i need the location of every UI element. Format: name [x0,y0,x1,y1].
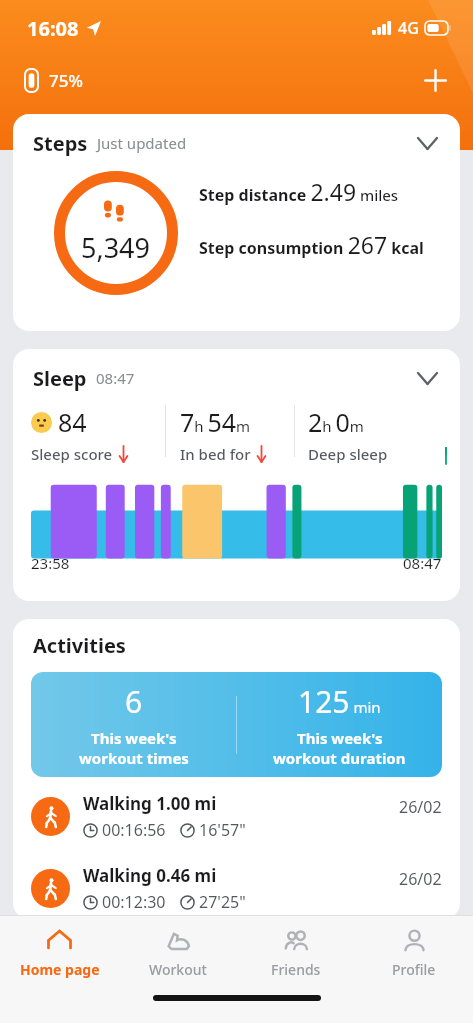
staticText: 6 [125,681,143,722]
staticText: Home page [20,960,100,979]
staticText: 00:16:56 [102,819,166,841]
staticText: Walking 1.00 mi [83,792,217,815]
staticText: Sleep [33,365,87,392]
staticText: 08:47 [96,368,135,388]
staticText: Deep sleep duration [308,444,446,467]
button[interactable]: Friends [237,916,355,990]
staticText: This week's [91,728,177,748]
staticText: 125 min [298,681,381,722]
staticText: Sleep score [31,444,113,464]
button[interactable]: Steps [13,114,460,331]
button[interactable]: Walking 1.00 mi [13,787,460,845]
staticText: 26/02 [399,868,442,890]
staticText: 2h 0m [308,405,364,439]
staticText: 16:08 [27,15,79,42]
staticText: workout times [79,748,189,768]
staticText: 84 [58,405,87,439]
staticText: This week's [297,728,383,748]
button[interactable]: Home page [0,916,119,990]
button[interactable]: Sleep [13,349,460,601]
button[interactable]: 75% [25,69,83,92]
staticText: 27'25" [199,891,246,913]
staticText: 08:47 [403,553,442,573]
staticText: 75% [49,69,83,92]
staticText: 16'57" [199,819,246,841]
staticText: 4G [398,17,419,39]
button[interactable]: Workout [119,916,237,990]
staticText: Profile [392,960,436,979]
staticText: 26/02 [399,796,442,818]
button[interactable]: Profile [355,916,473,990]
button[interactable]: Expand [412,363,442,393]
button[interactable]: 6 [31,672,442,777]
staticText: Step distance 2.49 miles [199,176,399,207]
staticText: Walking 0.46 mi [83,864,217,887]
staticText: Just updated [97,133,187,153]
staticText: 00:12:30 [102,891,166,913]
staticText: 5,349 [81,229,151,266]
staticText: 23:58 [31,553,70,573]
button[interactable]: Expand [412,128,442,158]
staticText: Activities [33,632,126,659]
button[interactable]: Add [415,60,455,100]
staticText: Steps [33,130,88,157]
staticText: In bed for [180,444,251,464]
staticText: Step consumption 267 kcal [199,229,424,260]
staticText: workout duration [273,748,406,768]
staticText: 7h 54m [180,405,251,439]
staticText: Workout [149,960,207,979]
button[interactable]: Walking 0.46 mi [13,859,460,917]
staticText: Friends [271,960,321,979]
